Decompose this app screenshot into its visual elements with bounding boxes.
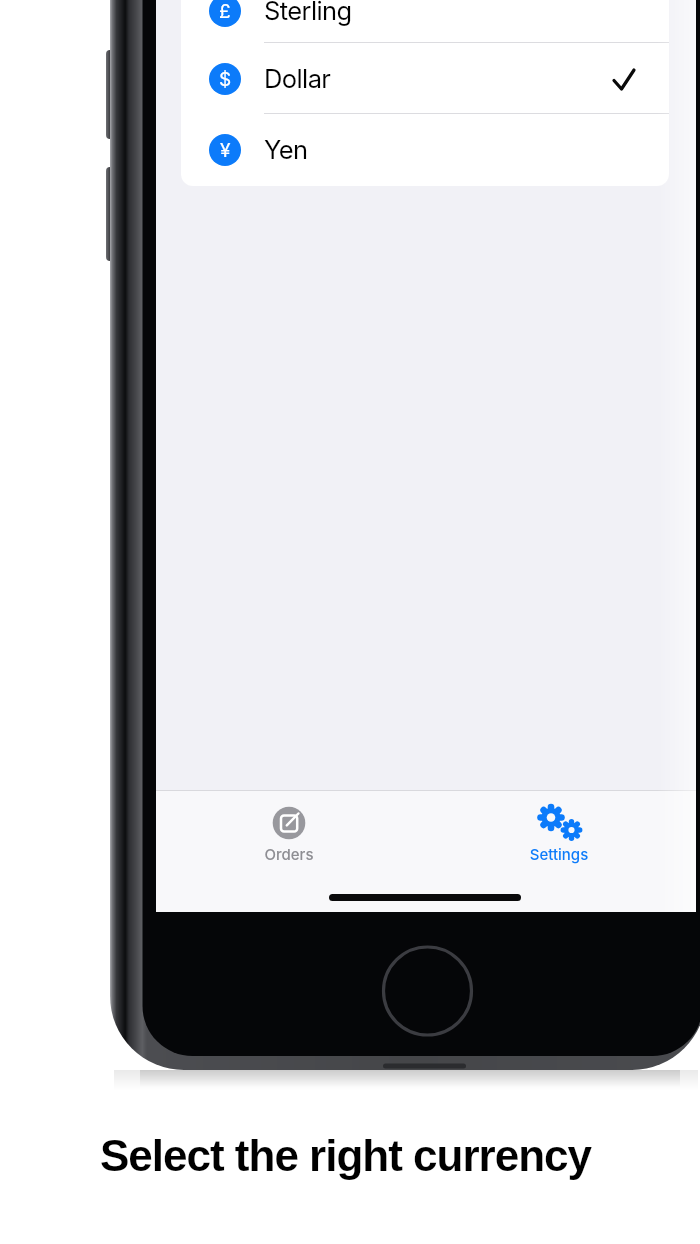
- staticText: Settings: [514, 845, 604, 863]
- staticText: Dollar: [264, 63, 331, 94]
- staticText: Orders: [244, 845, 334, 863]
- button[interactable]: Settings: [514, 806, 604, 868]
- staticText: ¥: [220, 139, 231, 162]
- button[interactable]: ¥: [181, 114, 669, 185]
- button[interactable]: $: [181, 43, 669, 114]
- button[interactable]: Orders: [244, 806, 334, 868]
- staticText: Sterling: [264, 0, 352, 26]
- staticText: £: [219, 0, 231, 23]
- staticText: Yen: [264, 134, 308, 165]
- staticText: Select the right currency: [100, 1131, 591, 1180]
- button[interactable]: £: [181, 0, 669, 46]
- staticText: $: [219, 68, 232, 91]
